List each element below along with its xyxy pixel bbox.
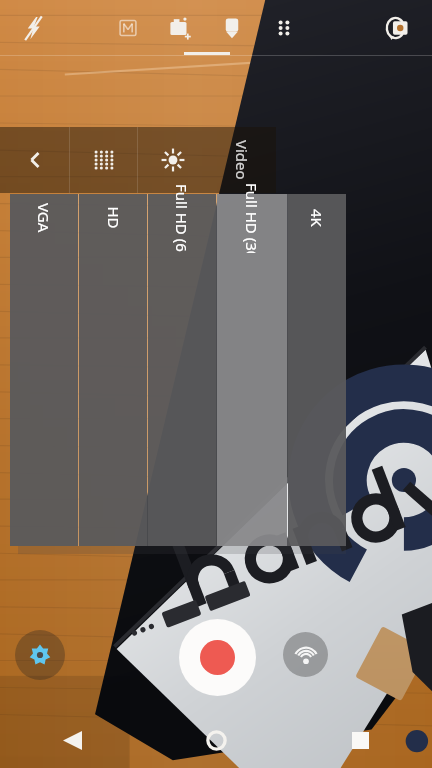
staticText: Full HD (60 BpS) xyxy=(172,184,192,252)
staticText: 4K xyxy=(307,209,327,227)
button[interactable]: Resolution grid xyxy=(70,127,137,193)
button[interactable]: Switch camera xyxy=(376,6,420,50)
button[interactable]: Record xyxy=(179,619,256,696)
button[interactable]: Recents xyxy=(288,712,432,768)
button[interactable]: Full HD (60 BpS) xyxy=(148,194,216,546)
button[interactable]: HD xyxy=(79,194,147,546)
button[interactable]: Full HD (30 BpS) xyxy=(217,194,287,546)
button[interactable]: Connect xyxy=(283,632,328,677)
button[interactable]: Settings xyxy=(15,630,65,680)
staticText: Full HD (30 BpS) xyxy=(242,183,262,253)
button[interactable]: Back xyxy=(0,127,69,193)
button[interactable]: Home xyxy=(144,712,288,768)
button[interactable]: More modes xyxy=(262,6,306,50)
button[interactable]: 4K xyxy=(288,194,346,546)
staticText: HD xyxy=(103,206,123,229)
staticText: Video xyxy=(232,140,252,180)
button[interactable]: Manual mode xyxy=(106,6,150,50)
button[interactable]: Brightness xyxy=(138,127,208,193)
button[interactable]: Video xyxy=(208,127,276,193)
button[interactable]: Photo mode xyxy=(158,6,202,50)
button[interactable]: VGA xyxy=(10,194,78,546)
button[interactable]: Flash off xyxy=(12,6,56,50)
button[interactable]: Video mode, selected xyxy=(210,6,254,50)
staticText: VGA xyxy=(34,203,54,233)
button[interactable]: Back xyxy=(0,712,144,768)
